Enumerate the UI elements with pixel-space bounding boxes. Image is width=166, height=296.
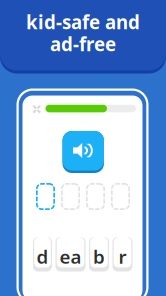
staticText: ad-free xyxy=(50,31,116,56)
button[interactable]: ea xyxy=(55,237,85,271)
staticText: b xyxy=(93,244,105,269)
staticText: r xyxy=(118,244,126,269)
button[interactable]: Close xyxy=(30,103,43,116)
button[interactable]: d xyxy=(33,237,52,271)
staticText: d xyxy=(36,244,48,269)
staticText: kid-safe and xyxy=(26,10,140,34)
button[interactable]: r xyxy=(112,237,132,271)
staticText: ea xyxy=(59,244,81,269)
button[interactable]: Play audio xyxy=(62,131,104,173)
button[interactable]: b xyxy=(89,237,109,271)
